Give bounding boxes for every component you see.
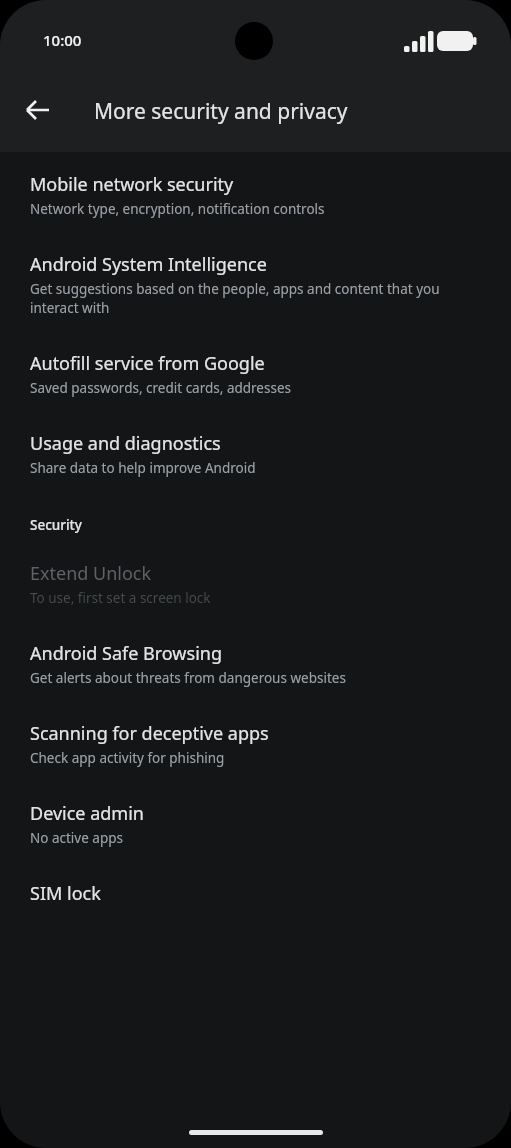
button[interactable]: Back (14, 86, 62, 134)
button[interactable]: Android System Intelligence (0, 235, 511, 334)
staticText: Check app activity for phishing (30, 748, 225, 767)
staticText: Device admin (30, 802, 144, 825)
staticText: Autofill service from Google (30, 352, 265, 375)
staticText: Android Safe Browsing (30, 642, 222, 665)
staticText: No active apps (30, 828, 123, 847)
button[interactable]: Autofill service from Google (0, 334, 511, 414)
staticText: Mobile network security (30, 173, 234, 196)
staticText: Scanning for deceptive apps (30, 722, 269, 745)
button[interactable]: Extend Unlock (0, 544, 511, 624)
staticText: 10:00 (43, 30, 82, 50)
button[interactable]: Scanning for deceptive apps (0, 704, 511, 784)
staticText: Usage and diagnostics (30, 432, 221, 455)
button[interactable]: Android Safe Browsing (0, 624, 511, 704)
button[interactable]: SIM lock (0, 864, 511, 922)
staticText: Saved passwords, credit cards, addresses (30, 378, 291, 397)
staticText: SIM lock (30, 882, 101, 905)
staticText: Get alerts about threats from dangerous … (30, 668, 346, 687)
staticText: Extend Unlock (30, 562, 152, 585)
staticText: More security and privacy (94, 97, 348, 126)
staticText: Android System Intelligence (30, 253, 267, 276)
button[interactable]: Device admin (0, 784, 511, 864)
staticText: Network type, encryption, notification c… (30, 199, 325, 218)
button[interactable]: Mobile network security (0, 152, 511, 235)
staticText: Share data to help improve Android (30, 458, 256, 477)
staticText: Get suggestions based on the people, app… (30, 279, 487, 317)
staticText: Security (30, 516, 82, 534)
staticText: To use, first set a screen lock (30, 588, 211, 607)
button[interactable]: Usage and diagnostics (0, 414, 511, 494)
